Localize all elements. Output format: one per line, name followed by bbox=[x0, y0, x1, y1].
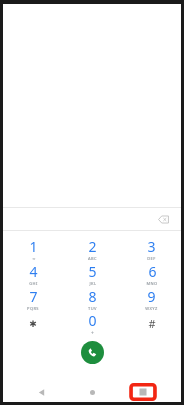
staticText: 0 bbox=[88, 311, 97, 330]
staticText: GHI bbox=[29, 281, 38, 286]
staticText: 2 bbox=[88, 237, 97, 256]
staticText: # bbox=[148, 316, 156, 331]
button[interactable]: Backspace bbox=[153, 209, 173, 229]
staticText: DEF bbox=[147, 256, 156, 261]
staticText: MNO bbox=[146, 281, 158, 286]
button[interactable]: 7 bbox=[3, 286, 63, 311]
staticText: + bbox=[91, 330, 94, 336]
button[interactable]: Home bbox=[79, 382, 105, 402]
staticText: 3 bbox=[147, 237, 156, 256]
button[interactable]: 6 bbox=[122, 261, 181, 286]
button[interactable]: Call bbox=[81, 341, 104, 364]
staticText: 1 bbox=[29, 237, 38, 256]
button[interactable]: # bbox=[122, 311, 181, 336]
staticText: TUV bbox=[88, 306, 97, 311]
button[interactable]: Back bbox=[28, 382, 54, 402]
staticText: WXYZ bbox=[145, 306, 158, 311]
button[interactable]: 1 bbox=[3, 236, 63, 261]
staticText: ∞ bbox=[32, 256, 36, 261]
staticText: ABC bbox=[88, 256, 97, 261]
button[interactable]: Recent apps bbox=[130, 382, 156, 402]
staticText: 8 bbox=[88, 287, 97, 306]
button[interactable]: 2 bbox=[63, 236, 122, 261]
staticText: 6 bbox=[148, 262, 157, 281]
staticText: ✱ bbox=[29, 319, 37, 329]
staticText: 9 bbox=[147, 287, 156, 306]
staticText: JKL bbox=[89, 281, 97, 286]
button[interactable]: 9 bbox=[122, 286, 181, 311]
button[interactable]: 0 bbox=[63, 311, 122, 336]
staticText: 7 bbox=[29, 287, 38, 306]
button[interactable]: ✱ bbox=[3, 311, 63, 336]
button[interactable]: 4 bbox=[3, 261, 63, 286]
staticText: PQRS bbox=[27, 306, 39, 311]
button[interactable]: 3 bbox=[122, 236, 181, 261]
button[interactable]: 5 bbox=[63, 261, 122, 286]
staticText: 4 bbox=[29, 262, 38, 281]
staticText: 5 bbox=[88, 262, 97, 281]
button[interactable]: 8 bbox=[63, 286, 122, 311]
